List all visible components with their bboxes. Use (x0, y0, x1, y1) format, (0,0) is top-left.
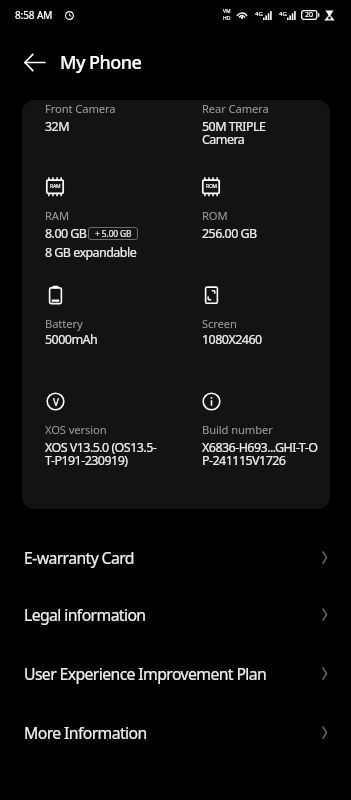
staticText: 20 (305, 10, 314, 20)
staticText: 8.00 GB (45, 225, 87, 242)
staticText: Legal information (24, 604, 146, 626)
staticText: 256.00 GB (202, 225, 257, 242)
staticText: 50M TRIPLE Camera (202, 118, 266, 148)
staticText: My Phone (60, 50, 142, 75)
staticText: XOS V13.5.0 (OS13.5- T-P191-230919) (45, 439, 157, 469)
staticText: HD (223, 15, 231, 22)
staticText: XOS version (45, 422, 107, 437)
staticText: 8:58 AM (15, 8, 53, 22)
staticText: Build number (202, 422, 273, 437)
staticText: 4G (255, 10, 263, 18)
staticText: More Information (24, 722, 147, 744)
button[interactable]: Back (14, 42, 54, 82)
staticText: ROM (206, 183, 217, 190)
button[interactable]: E-warranty Card (0, 528, 351, 587)
staticText: 32M (45, 118, 69, 135)
staticText: 1080X2460 (202, 331, 262, 348)
staticText: + 5.00 GB (95, 228, 132, 239)
staticText: 4G (279, 10, 287, 18)
staticText: E-warranty Card (24, 547, 134, 569)
staticText: Battery (45, 316, 83, 331)
staticText: User Experience Improvement Plan (24, 663, 267, 685)
staticText: VM (223, 8, 231, 15)
staticText: Front Camera (45, 101, 116, 116)
staticText: 8 GB expandable (45, 244, 137, 261)
button[interactable]: User Experience Improvement Plan (0, 644, 351, 703)
staticText: V (53, 395, 59, 409)
staticText: 5000mAh (45, 331, 98, 348)
staticText: Rear Camera (202, 101, 269, 116)
staticText: Screen (202, 316, 237, 331)
button[interactable]: Legal information (0, 585, 351, 644)
staticText: X6836-H693...GHI-T-O P-241115V1726 (202, 439, 318, 469)
staticText: RAM (45, 208, 69, 223)
staticText: RAM (50, 183, 61, 190)
staticText: ROM (202, 208, 228, 223)
button[interactable]: More Information (0, 703, 351, 762)
